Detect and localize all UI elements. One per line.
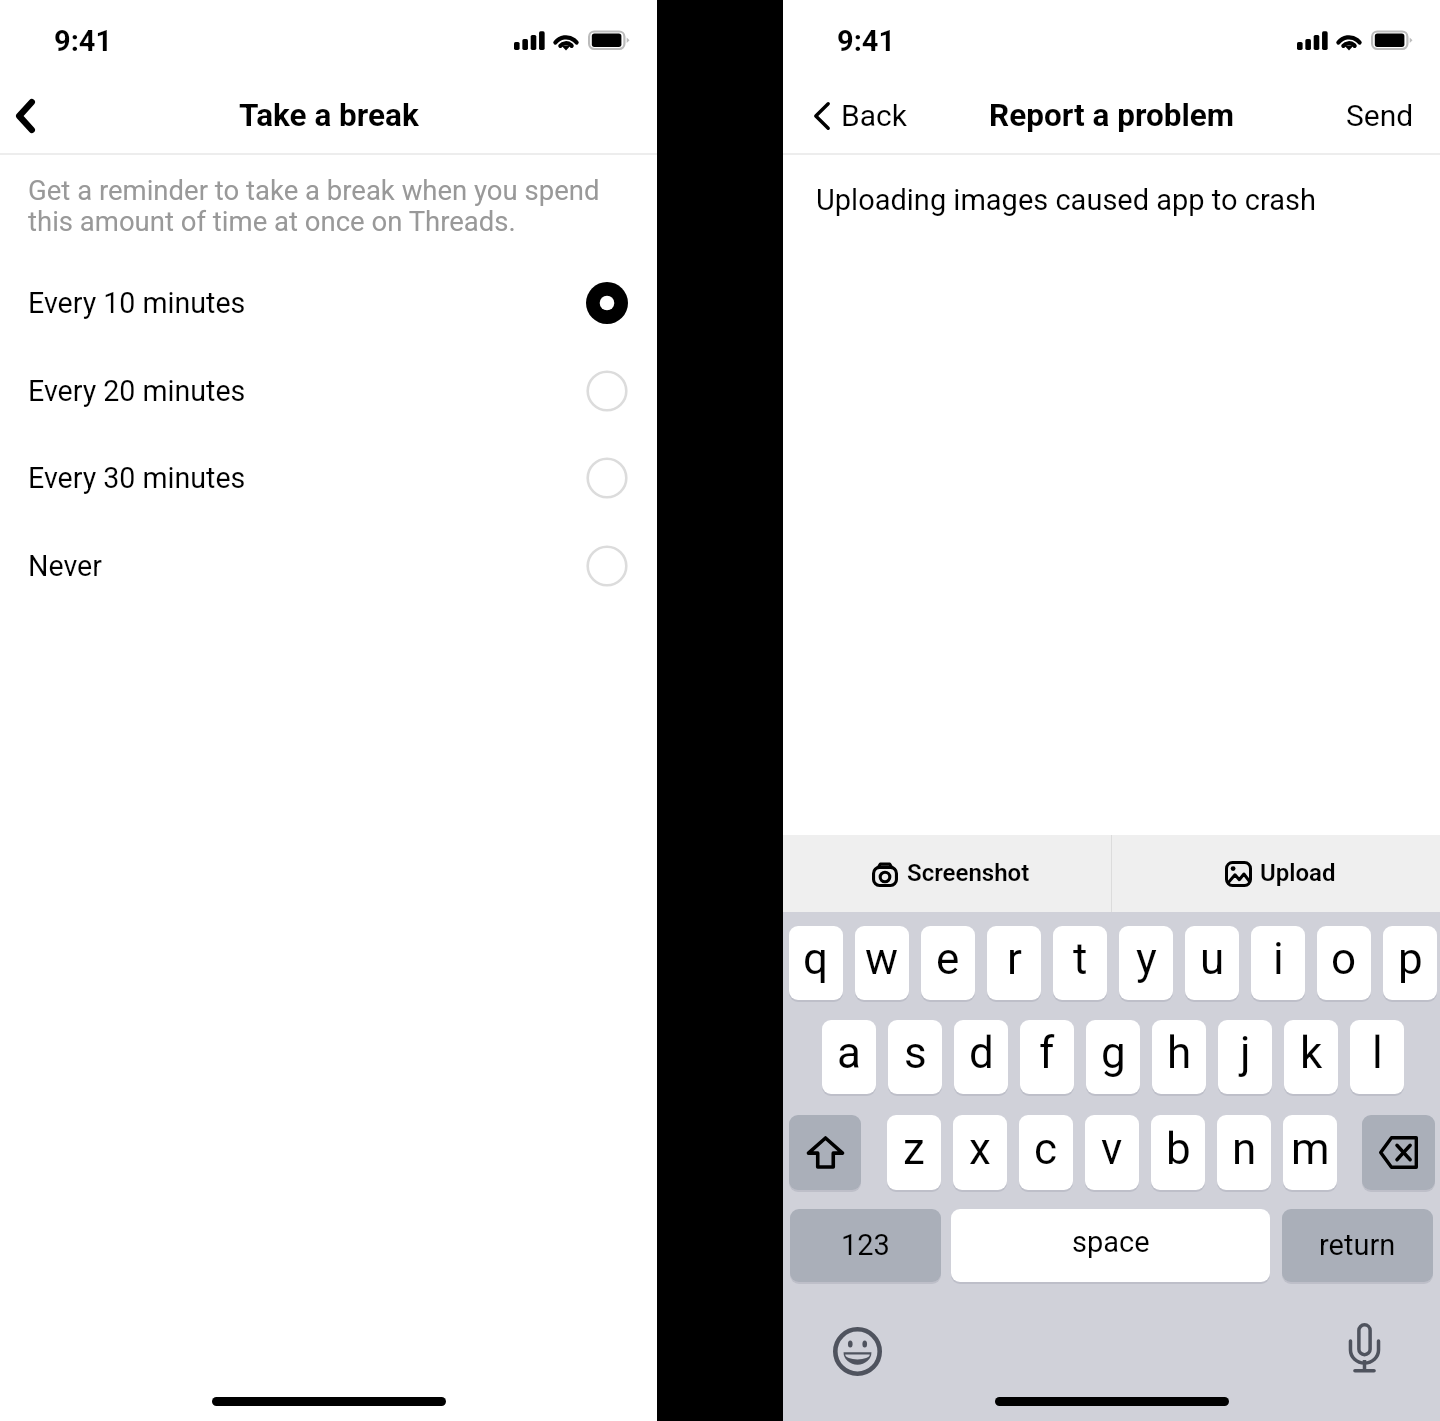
staticText: d — [969, 1027, 994, 1079]
button[interactable]: Back — [0, 78, 62, 153]
staticText: g — [1101, 1027, 1126, 1079]
button[interactable]: q — [789, 926, 843, 1000]
button[interactable]: v — [1085, 1115, 1139, 1190]
button[interactable]: space — [951, 1209, 1270, 1282]
button[interactable]: m — [1283, 1115, 1337, 1190]
button[interactable]: s — [888, 1020, 942, 1094]
staticText: m — [1291, 1123, 1330, 1175]
staticText: space — [1072, 1225, 1150, 1259]
button[interactable]: g — [1086, 1020, 1140, 1094]
button[interactable]: a — [822, 1020, 876, 1094]
staticText: w — [865, 933, 899, 985]
staticText: n — [1232, 1123, 1257, 1175]
button[interactable]: p — [1383, 926, 1437, 1000]
button[interactable]: i — [1251, 926, 1305, 1000]
staticText: Upload — [1260, 859, 1336, 887]
staticText: r — [1007, 933, 1022, 985]
button[interactable]: c — [1019, 1115, 1073, 1190]
button[interactable]: k — [1284, 1020, 1338, 1094]
staticText: x — [969, 1123, 991, 1175]
button[interactable]: return — [1282, 1209, 1433, 1282]
staticText: o — [1331, 933, 1357, 985]
staticText: Every 30 minutes — [28, 461, 246, 495]
button[interactable]: Emoji keyboard — [833, 1327, 882, 1376]
staticText: 123 — [841, 1228, 890, 1262]
staticText: s — [904, 1027, 927, 1079]
button[interactable]: t — [1053, 926, 1107, 1000]
staticText: Get a reminder to take a break when you … — [28, 174, 608, 238]
staticText: Never — [28, 549, 102, 583]
button[interactable]: h — [1152, 1020, 1206, 1094]
staticText: t — [1073, 933, 1088, 985]
staticText: h — [1167, 1027, 1192, 1079]
staticText: q — [803, 933, 829, 985]
button[interactable]: x — [953, 1115, 1007, 1190]
button[interactable]: Shift — [789, 1115, 861, 1190]
button[interactable]: y — [1119, 926, 1173, 1000]
button[interactable]: Every 30 minutes — [0, 434, 657, 522]
staticText: Back — [841, 98, 907, 133]
staticText: Every 20 minutes — [28, 374, 246, 408]
button[interactable]: r — [987, 926, 1041, 1000]
staticText: v — [1101, 1123, 1123, 1175]
button[interactable]: n — [1217, 1115, 1271, 1190]
staticText: c — [1034, 1123, 1058, 1175]
staticText: return — [1319, 1228, 1396, 1262]
staticText: Screenshot — [907, 859, 1030, 887]
button[interactable]: Screenshot — [783, 835, 1111, 912]
button[interactable]: Every 20 minutes — [0, 347, 657, 435]
button[interactable]: e — [921, 926, 975, 1000]
button[interactable]: Dictation — [1348, 1323, 1381, 1373]
button[interactable]: d — [954, 1020, 1008, 1094]
staticText: Send — [1346, 98, 1414, 133]
button[interactable]: Never — [0, 522, 657, 610]
button[interactable]: w — [855, 926, 909, 1000]
staticText: b — [1166, 1123, 1191, 1175]
staticText: k — [1300, 1027, 1323, 1079]
staticText: a — [837, 1027, 861, 1079]
staticText: y — [1136, 933, 1157, 985]
staticText: 9:41 — [837, 24, 896, 58]
button[interactable]: Back — [814, 78, 907, 153]
staticText: p — [1398, 933, 1423, 985]
staticText: 9:41 — [54, 24, 113, 58]
button[interactable]: l — [1350, 1020, 1404, 1094]
button[interactable]: Backspace — [1362, 1115, 1435, 1190]
button[interactable]: Send — [1346, 78, 1414, 153]
staticText: j — [1240, 1027, 1251, 1079]
staticText: Every 10 minutes — [28, 286, 246, 320]
staticText: Take a break — [239, 97, 419, 134]
button[interactable]: z — [887, 1115, 941, 1190]
button[interactable]: Upload — [1112, 835, 1440, 912]
button[interactable]: Every 10 minutes — [0, 259, 657, 347]
button[interactable]: u — [1185, 926, 1239, 1000]
button[interactable]: o — [1317, 926, 1371, 1000]
staticText: u — [1200, 933, 1225, 985]
button[interactable]: 123 — [790, 1209, 941, 1282]
staticText: e — [936, 933, 960, 985]
staticText: i — [1273, 933, 1284, 985]
button[interactable]: j — [1218, 1020, 1272, 1094]
button[interactable]: f — [1020, 1020, 1074, 1094]
staticText: z — [903, 1123, 925, 1175]
staticText: Uploading images caused app to crash — [816, 183, 1316, 217]
button[interactable]: b — [1151, 1115, 1205, 1190]
staticText: Report a problem — [989, 97, 1235, 134]
staticText: l — [1372, 1027, 1383, 1079]
staticText: f — [1039, 1027, 1055, 1079]
